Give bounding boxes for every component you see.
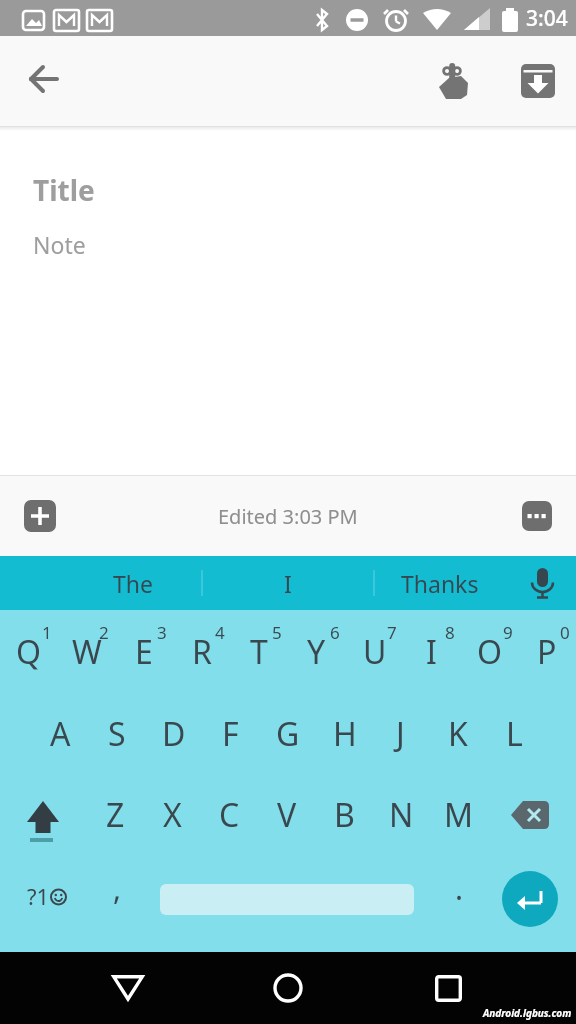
- staticText: N: [389, 793, 414, 837]
- staticText: G: [276, 712, 300, 756]
- staticText: H: [333, 712, 357, 756]
- button[interactable]: W: [58, 611, 115, 693]
- staticText: I: [426, 630, 437, 674]
- staticText: M: [444, 793, 474, 837]
- staticText: Z: [106, 793, 125, 837]
- staticText: 1: [42, 621, 52, 644]
- staticText: W: [72, 630, 102, 674]
- button[interactable]: [101, 961, 155, 1015]
- button[interactable]: [502, 871, 558, 927]
- button[interactable]: .: [434, 856, 484, 936]
- button[interactable]: S: [88, 693, 145, 774]
- button[interactable]: X: [144, 774, 201, 855]
- staticText: Edited 3:03 PM: [218, 503, 358, 530]
- staticText: Title: [33, 171, 95, 209]
- button[interactable]: P: [518, 611, 575, 693]
- staticText: A: [50, 712, 71, 756]
- staticText: 5: [272, 621, 282, 644]
- staticText: 2: [99, 621, 109, 644]
- staticText: The: [113, 568, 153, 599]
- button[interactable]: U: [346, 611, 403, 693]
- button[interactable]: K: [429, 693, 486, 774]
- button[interactable]: J: [372, 693, 429, 774]
- staticText: S: [108, 712, 126, 756]
- staticText: 7: [387, 621, 397, 644]
- button[interactable]: V: [258, 774, 315, 855]
- button[interactable]: I: [403, 611, 460, 693]
- button[interactable]: [160, 884, 414, 915]
- staticText: 8: [445, 621, 455, 644]
- staticText: I: [284, 568, 292, 599]
- staticText: Q: [16, 630, 41, 674]
- staticText: .: [455, 868, 464, 909]
- button[interactable]: I: [204, 556, 372, 610]
- button[interactable]: [18, 55, 70, 107]
- staticText: ,: [113, 868, 122, 909]
- staticText: F: [222, 712, 239, 756]
- button[interactable]: [14, 774, 74, 855]
- staticText: L: [506, 712, 523, 756]
- staticText: K: [448, 712, 468, 756]
- button[interactable]: [24, 500, 56, 532]
- button[interactable]: [424, 53, 480, 109]
- button[interactable]: [261, 961, 315, 1015]
- staticText: O: [477, 630, 502, 674]
- staticText: R: [192, 630, 212, 674]
- button[interactable]: A: [32, 693, 89, 774]
- staticText: 0: [560, 621, 570, 644]
- staticText: D: [162, 712, 186, 756]
- staticText: ?1: [27, 881, 50, 911]
- staticText: J: [396, 712, 405, 756]
- staticText: T: [250, 630, 268, 674]
- staticText: 3:04: [526, 4, 568, 33]
- staticText: Android.lgbus.com: [483, 1006, 572, 1020]
- button[interactable]: O: [461, 611, 518, 693]
- button[interactable]: [497, 774, 563, 855]
- button[interactable]: F: [202, 693, 259, 774]
- button[interactable]: [510, 53, 566, 109]
- button[interactable]: ?1: [12, 856, 82, 936]
- button[interactable]: M: [430, 774, 487, 855]
- button[interactable]: H: [316, 693, 373, 774]
- button[interactable]: D: [145, 693, 202, 774]
- staticText: Y: [307, 630, 326, 674]
- button[interactable]: T: [230, 611, 287, 693]
- button[interactable]: Y: [288, 611, 345, 693]
- button[interactable]: ,: [92, 856, 142, 936]
- staticText: 3: [157, 621, 167, 644]
- button[interactable]: Thanks: [376, 556, 504, 610]
- button[interactable]: Q: [0, 611, 57, 693]
- staticText: U: [363, 630, 387, 674]
- button[interactable]: E: [115, 611, 172, 693]
- staticText: B: [334, 793, 355, 837]
- button[interactable]: G: [259, 693, 316, 774]
- staticText: P: [537, 630, 557, 674]
- button[interactable]: B: [316, 774, 373, 855]
- button[interactable]: C: [201, 774, 258, 855]
- button[interactable]: L: [486, 693, 543, 774]
- button[interactable]: N: [373, 774, 430, 855]
- staticText: E: [135, 630, 153, 674]
- staticText: 9: [503, 621, 513, 644]
- button[interactable]: [522, 501, 552, 531]
- staticText: Thanks: [401, 568, 479, 599]
- button[interactable]: Z: [87, 774, 144, 855]
- button[interactable]: [508, 556, 576, 610]
- button[interactable]: The: [64, 556, 202, 610]
- staticText: 6: [330, 621, 340, 644]
- staticText: C: [219, 793, 240, 837]
- button[interactable]: R: [173, 611, 230, 693]
- staticText: 4: [215, 621, 225, 644]
- staticText: Note: [33, 229, 86, 260]
- staticText: X: [163, 793, 182, 837]
- staticText: V: [277, 793, 297, 837]
- button[interactable]: [421, 961, 475, 1015]
